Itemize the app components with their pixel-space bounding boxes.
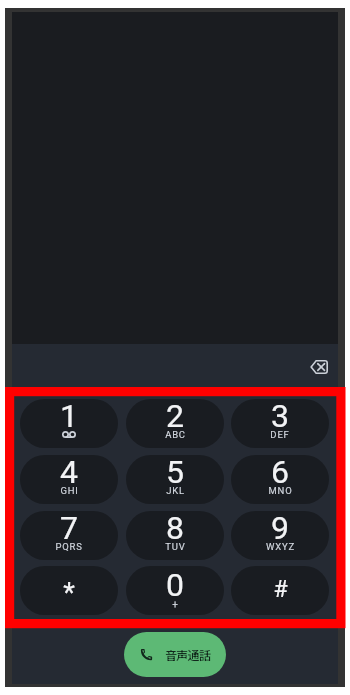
staticText: JKL <box>166 485 185 496</box>
staticText: 0 <box>166 566 184 604</box>
staticText: 8 <box>166 511 184 547</box>
button[interactable]: Backspace <box>300 348 338 386</box>
staticText: 4 <box>60 455 78 491</box>
button[interactable]: 1 <box>20 399 118 448</box>
staticText: 3 <box>271 399 289 435</box>
button[interactable]: 3 <box>231 399 329 448</box>
staticText: + <box>172 599 178 611</box>
button[interactable]: 7 <box>20 511 118 560</box>
button[interactable]: 音声通話 <box>124 632 226 677</box>
staticText: MNO <box>268 485 293 496</box>
button[interactable]: * <box>20 566 118 615</box>
button[interactable]: 4 <box>20 455 118 504</box>
staticText: WXYZ <box>266 541 295 552</box>
staticText: 音声通話 <box>165 646 211 663</box>
staticText: TUV <box>165 541 186 552</box>
button[interactable]: 5 <box>126 455 224 504</box>
staticText: # <box>273 576 288 603</box>
staticText: * <box>63 577 75 609</box>
button[interactable]: 2 <box>126 399 224 448</box>
button[interactable]: # <box>231 566 329 615</box>
button[interactable]: 6 <box>231 455 329 504</box>
button[interactable]: 9 <box>231 511 329 560</box>
staticText: 1 <box>60 399 78 435</box>
staticText: PQRS <box>55 541 83 552</box>
button[interactable]: 8 <box>126 511 224 560</box>
staticText: DEF <box>270 429 290 440</box>
staticText: ABC <box>165 429 186 440</box>
staticText: 6 <box>271 455 289 491</box>
staticText: 2 <box>166 399 184 435</box>
button[interactable]: 0 <box>126 566 224 615</box>
staticText: 7 <box>60 511 78 547</box>
staticText: 5 <box>166 455 184 491</box>
staticText: GHI <box>60 485 79 496</box>
staticText: 9 <box>271 511 289 547</box>
